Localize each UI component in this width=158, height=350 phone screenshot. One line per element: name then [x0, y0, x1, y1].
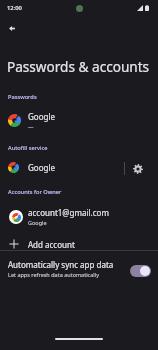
staticText: Autofill service	[8, 144, 48, 152]
button[interactable]: account1@gmail.com	[0, 202, 158, 230]
button[interactable]: Add account	[0, 235, 158, 253]
button[interactable]: Automatically sync app data	[130, 265, 151, 277]
staticText: account1@gmail.com	[28, 207, 109, 218]
staticText: Add account	[28, 239, 75, 250]
staticText: Let apps refresh data automatically	[8, 271, 99, 278]
staticText: Google	[28, 162, 55, 173]
staticText: 12:00	[7, 4, 22, 12]
staticText: —	[28, 123, 34, 130]
staticText: Automatically sync app data	[8, 259, 114, 270]
staticText: Accounts for Owner	[8, 188, 62, 196]
staticText: Google	[28, 219, 47, 226]
staticText: Passwords & accounts	[7, 57, 150, 76]
button[interactable]: Automatically sync app data	[0, 253, 158, 283]
staticText: Passwords	[8, 93, 37, 101]
staticText: Google	[28, 111, 55, 122]
button[interactable]: Google	[0, 155, 124, 179]
button[interactable]: Navigate up	[0, 16, 24, 40]
button[interactable]: Google	[0, 106, 158, 134]
button[interactable]: Autofill service settings	[125, 155, 153, 179]
